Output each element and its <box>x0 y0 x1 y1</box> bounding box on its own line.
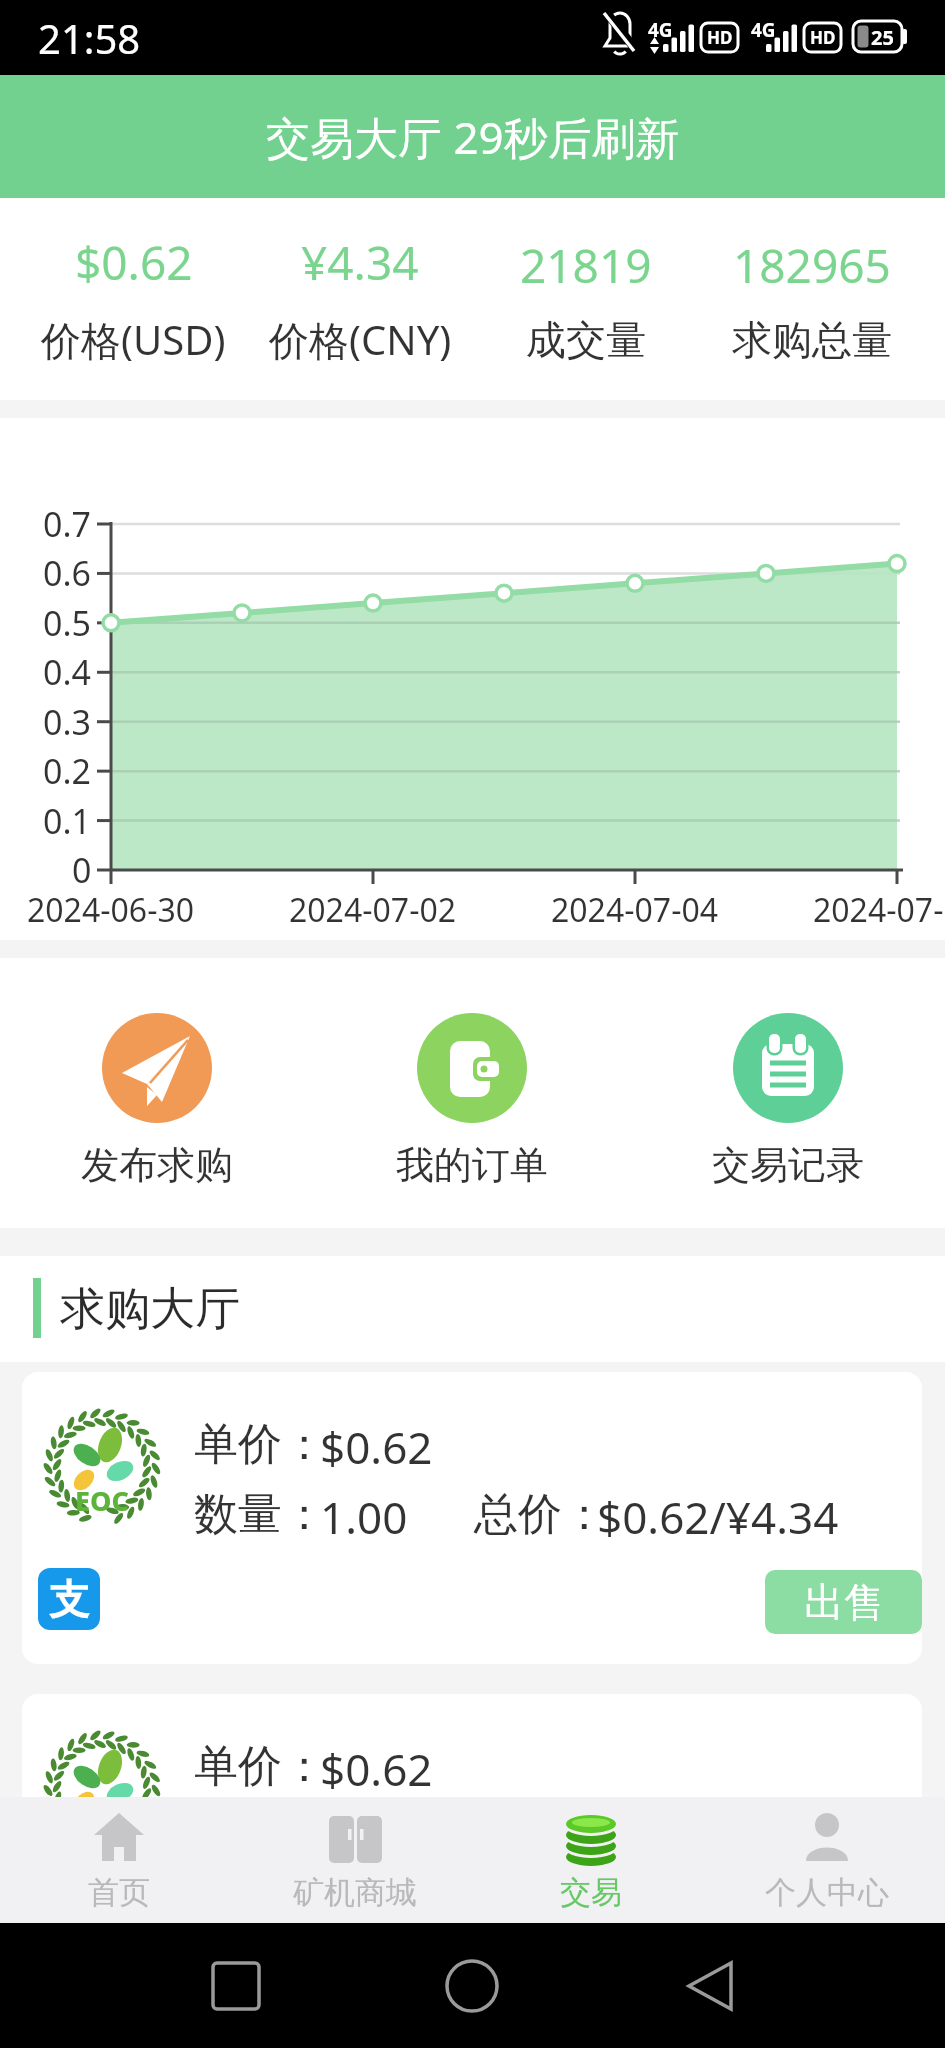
staticText: 0.1 <box>43 798 92 844</box>
staticText: $0.62 <box>75 231 193 294</box>
button[interactable]: EOC <box>22 1694 922 1986</box>
staticText: 0.3 <box>43 699 92 745</box>
staticText: EOC <box>75 1804 129 1841</box>
staticText: 2024-07-06 <box>813 888 945 932</box>
staticText: 价格(CNY) <box>269 312 452 367</box>
staticText: 25 <box>871 24 894 51</box>
staticText: HD <box>810 26 836 49</box>
staticText: 单价： <box>194 1417 326 1472</box>
staticText: 2024-07-04 <box>551 888 719 932</box>
staticText: 单价： <box>194 1739 326 1794</box>
staticText: 发布求购 <box>81 1141 233 1189</box>
staticText: 首页 <box>88 1873 150 1912</box>
staticText: 0.4 <box>43 649 92 695</box>
staticText: 4G <box>751 17 776 43</box>
staticText: 求购总量 <box>732 315 892 365</box>
staticText: 21:58 <box>38 11 141 65</box>
staticText: 矿机商城 <box>293 1873 417 1912</box>
staticText: 支 <box>49 1896 89 1946</box>
staticText: 4G <box>648 17 673 43</box>
staticText: 交易记录 <box>712 1141 864 1189</box>
staticText: 1.00 <box>320 1487 408 1547</box>
button[interactable]: 首页 <box>0 1797 237 1923</box>
staticText: $0.62 <box>320 1739 433 1799</box>
staticText: 总价： <box>474 1487 606 1542</box>
staticText: HD <box>707 26 733 49</box>
staticText: 0.7 <box>43 501 92 547</box>
staticText: 成交量 <box>526 315 646 365</box>
staticText: 0.2 <box>43 748 92 794</box>
staticText: 2024-06-30 <box>27 888 195 932</box>
staticText: 我的订单 <box>396 1141 548 1189</box>
staticText: 交易 <box>560 1873 622 1912</box>
staticText: 0 <box>72 847 92 893</box>
button[interactable]: 个人中心 <box>709 1797 945 1923</box>
staticText: 0.5 <box>43 600 92 646</box>
staticText: 出售 <box>804 1577 884 1627</box>
staticText: 个人中心 <box>765 1873 889 1912</box>
button[interactable]: 出售 <box>765 1892 922 1956</box>
staticText: 出售 <box>804 1899 884 1949</box>
staticText: 支 <box>49 1574 89 1624</box>
button[interactable]: 发布求购 <box>47 1013 267 1189</box>
staticText: ¥4.34 <box>301 231 419 294</box>
staticText: 价格(USD) <box>41 312 226 367</box>
staticText: 交易大厅 29秒后刷新 <box>266 107 680 167</box>
staticText: $0.62/¥4.34 <box>597 1487 839 1547</box>
staticText: 182965 <box>733 234 891 297</box>
button[interactable]: 交易记录 <box>678 1013 898 1189</box>
button[interactable]: 交易 <box>473 1797 709 1923</box>
button[interactable]: 我的订单 <box>362 1013 582 1189</box>
staticText: 2024-07-02 <box>289 888 457 932</box>
staticText: 1.00 <box>320 1809 408 1869</box>
staticText: $0.62 <box>320 1417 433 1477</box>
button[interactable]: 矿机商城 <box>237 1797 473 1923</box>
staticText: 21819 <box>520 234 652 297</box>
staticText: 求购大厅 <box>60 1281 240 1338</box>
staticText: 总价： <box>474 1809 606 1864</box>
button[interactable]: 出售 <box>765 1570 922 1634</box>
button[interactable]: EOC <box>22 1372 922 1664</box>
staticText: 数量： <box>194 1487 326 1542</box>
staticText: $0.62/¥4.34 <box>597 1809 839 1869</box>
staticText: 0.6 <box>43 550 92 596</box>
staticText: EOC <box>75 1482 129 1519</box>
